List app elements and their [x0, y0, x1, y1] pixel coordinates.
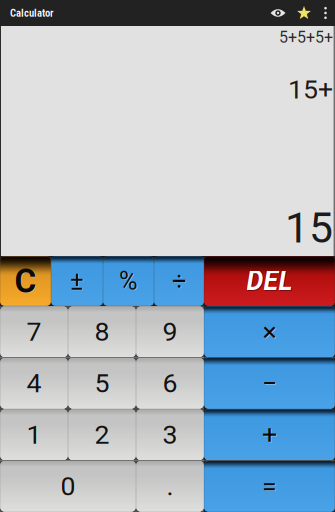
- staticText: 8: [94, 316, 109, 347]
- button[interactable]: 9: [136, 306, 204, 357]
- button[interactable]: 0: [0, 460, 136, 512]
- staticText: 3: [162, 419, 177, 450]
- staticText: 7: [26, 316, 41, 347]
- staticText: 6: [162, 368, 177, 399]
- button[interactable]: Preview: [264, 0, 292, 26]
- button[interactable]: C: [0, 256, 51, 306]
- button[interactable]: ÷: [154, 256, 204, 306]
- staticText: 9: [162, 316, 177, 347]
- staticText: =: [263, 471, 278, 503]
- button[interactable]: =: [204, 460, 335, 512]
- button[interactable]: Favourite: [292, 0, 316, 26]
- staticText: ×: [262, 316, 276, 347]
- button[interactable]: %: [103, 256, 154, 306]
- staticText: 4: [26, 368, 41, 399]
- button[interactable]: .: [136, 460, 204, 512]
- staticText: −: [262, 368, 277, 399]
- button[interactable]: ±: [51, 256, 103, 306]
- staticText: 2: [94, 419, 109, 450]
- button[interactable]: 4: [0, 357, 68, 409]
- staticText: 15: [285, 203, 333, 253]
- staticText: ±: [70, 266, 84, 296]
- button[interactable]: DEL: [204, 256, 335, 306]
- staticText: %: [119, 266, 138, 296]
- staticText: %: [120, 267, 139, 297]
- staticText: ±: [71, 267, 85, 297]
- button[interactable]: 3: [136, 409, 204, 460]
- staticText: C: [14, 261, 36, 301]
- staticText: =: [262, 471, 277, 502]
- staticText: 1: [26, 419, 41, 450]
- button[interactable]: 8: [68, 306, 136, 357]
- button[interactable]: 6: [136, 357, 204, 409]
- staticText: ÷: [173, 267, 187, 297]
- button[interactable]: 5: [68, 357, 136, 409]
- button[interactable]: 1: [0, 409, 68, 460]
- staticText: −: [263, 368, 278, 400]
- staticText: Calculator: [10, 7, 54, 19]
- staticText: 5+5+5+: [279, 28, 333, 47]
- button[interactable]: +: [204, 409, 335, 460]
- button[interactable]: More options: [316, 0, 335, 26]
- staticText: .: [166, 471, 173, 502]
- staticText: +: [262, 419, 277, 450]
- staticText: 0: [60, 471, 75, 502]
- staticText: ÷: [172, 266, 186, 296]
- button[interactable]: −: [204, 357, 335, 409]
- staticText: DEL: [247, 266, 293, 297]
- staticText: 15+: [288, 74, 333, 105]
- staticText: 5: [94, 368, 109, 399]
- button[interactable]: ×: [204, 306, 335, 357]
- staticText: C: [15, 262, 37, 301]
- button[interactable]: 2: [68, 409, 136, 460]
- staticText: +: [263, 420, 278, 451]
- staticText: DEL: [246, 265, 292, 297]
- button[interactable]: 7: [0, 306, 68, 357]
- staticText: ×: [263, 317, 277, 348]
